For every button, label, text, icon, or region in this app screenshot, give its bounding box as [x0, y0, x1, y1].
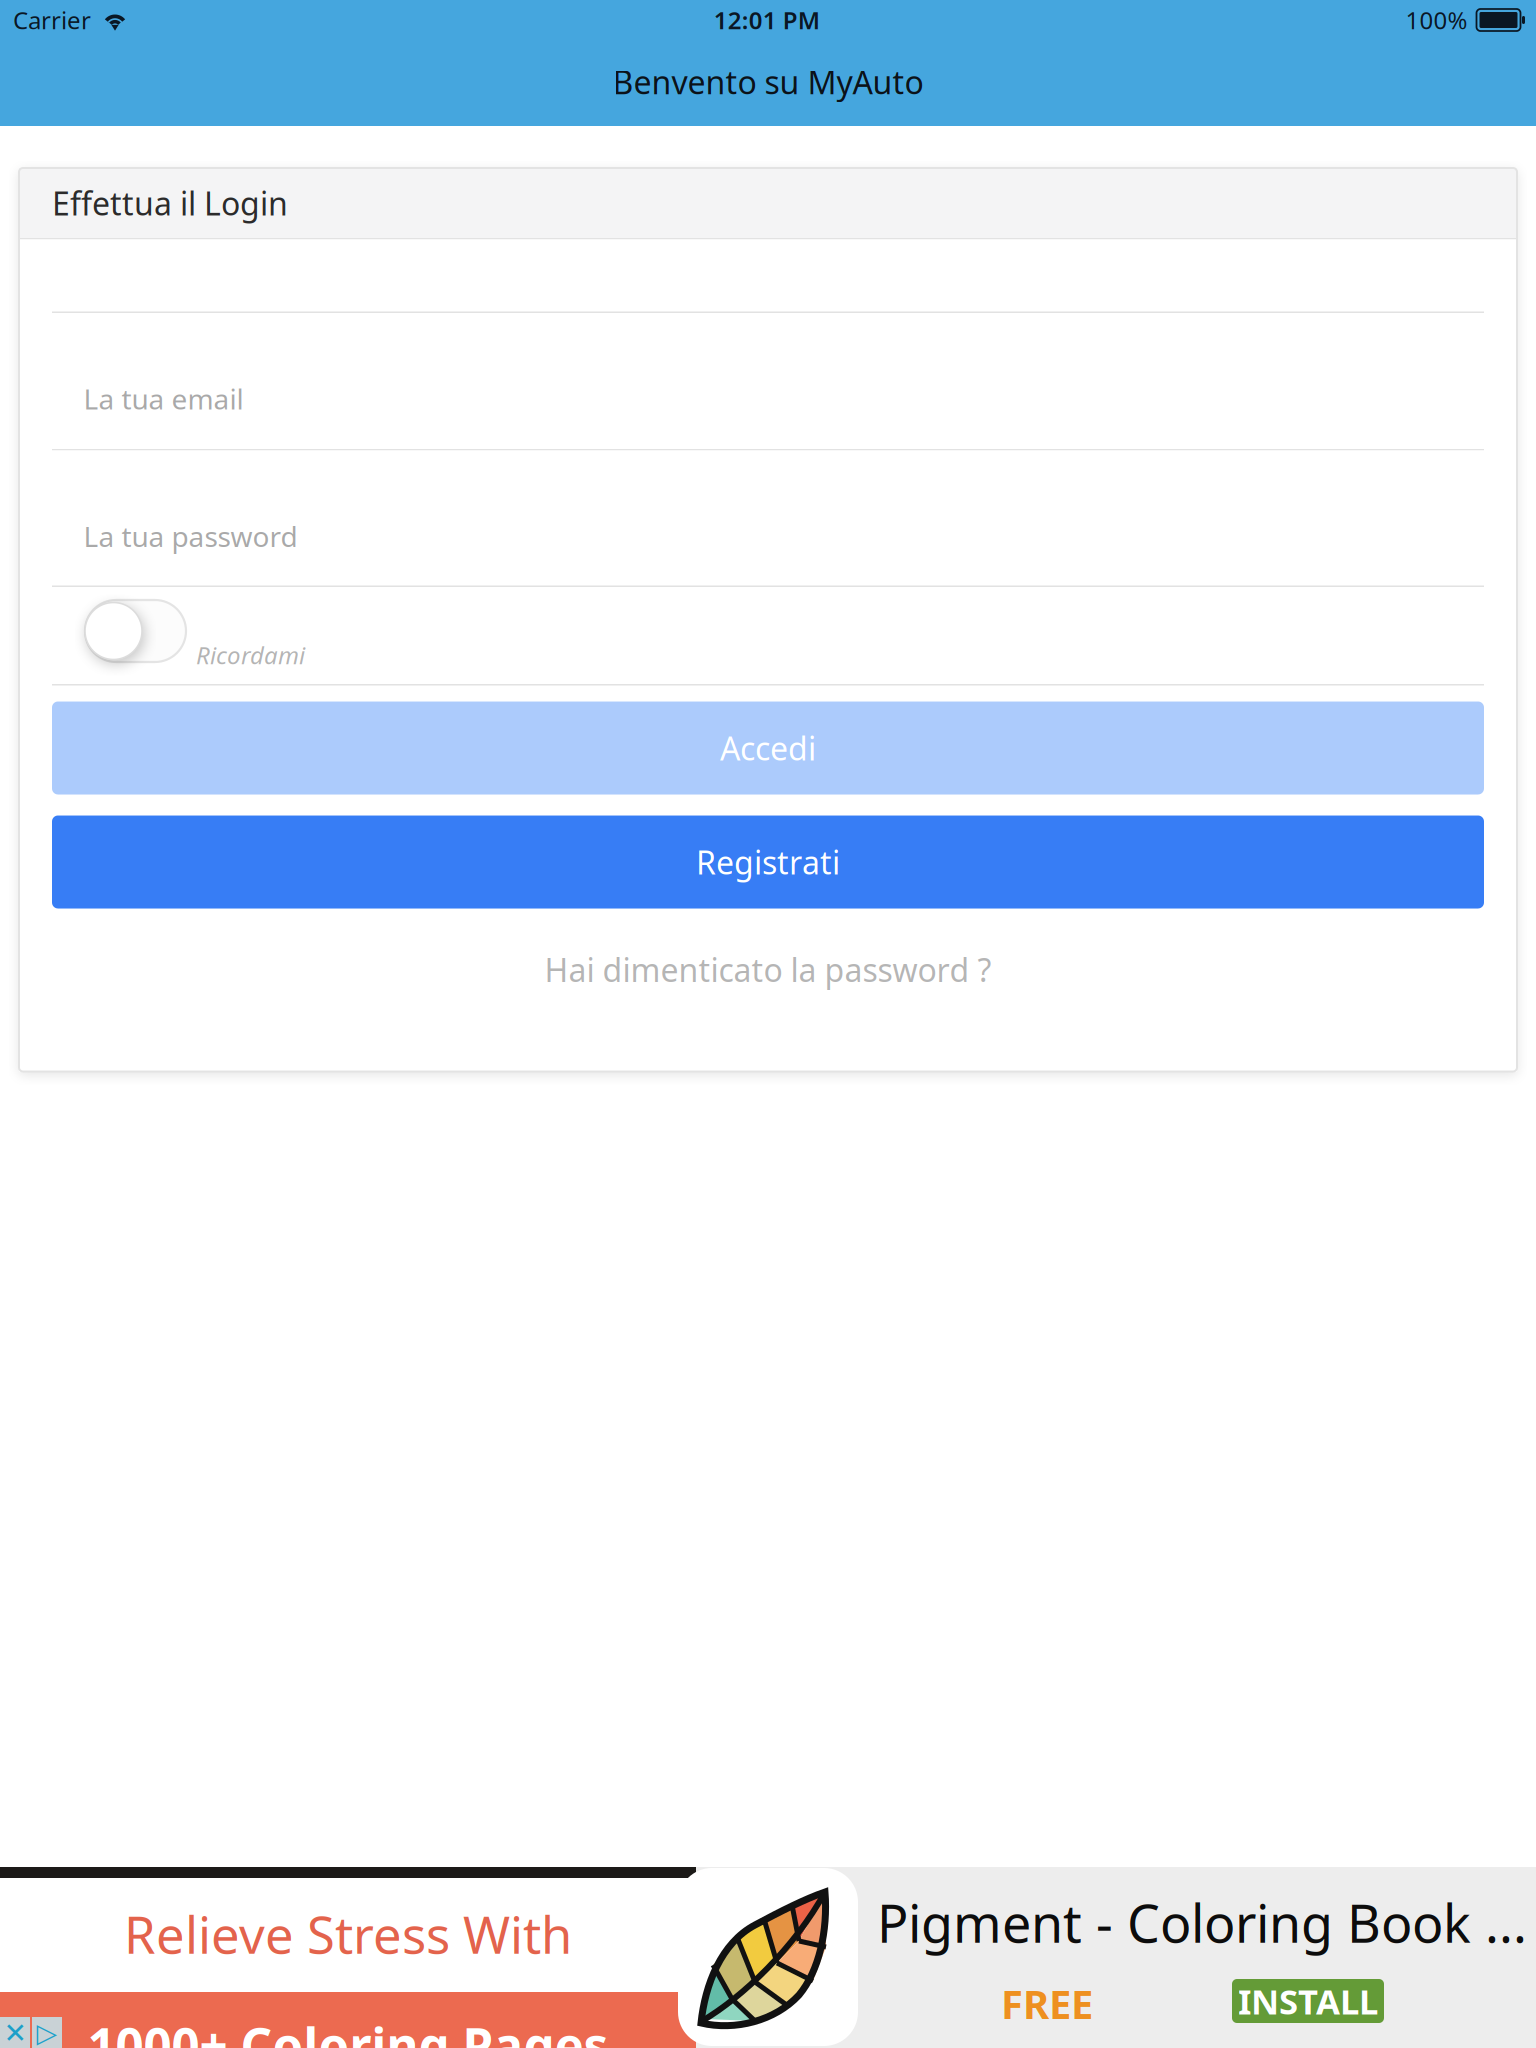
staticText: 100%	[1405, 4, 1467, 36]
staticText: INSTALL	[1238, 1978, 1378, 2024]
staticText: ✕	[3, 2017, 26, 2048]
button[interactable]: La tua email	[19, 313, 1517, 449]
button[interactable]: La tua password	[19, 450, 1517, 585]
button[interactable]: Registrati	[52, 815, 1484, 908]
staticText: Benvento su MyAuto	[612, 60, 923, 103]
staticText: La tua email	[83, 380, 243, 417]
staticText: Registrati	[696, 841, 840, 883]
staticText: Ricordami	[196, 639, 305, 671]
staticText: 1000+ Coloring Pages	[87, 2012, 608, 2048]
button[interactable]: Ricordami	[19, 587, 1517, 684]
button[interactable]: Advertisement: Pigment Coloring Book, fr…	[0, 1867, 1536, 2048]
staticText: Carrier	[13, 4, 91, 36]
button[interactable]: Hai dimenticato la password ?	[52, 929, 1484, 1009]
staticText: Pigment - Coloring Book ...	[877, 1888, 1527, 1957]
staticText: FREE	[1001, 1977, 1093, 2030]
button[interactable]: Accedi	[52, 701, 1484, 794]
staticText: La tua password	[83, 517, 297, 555]
staticText: Accedi	[720, 727, 816, 769]
staticText: Relieve Stress With	[124, 1900, 572, 1968]
staticText: Effettua il Login	[52, 182, 288, 224]
staticText: 12:01 PM	[714, 4, 820, 36]
staticText: ▷	[36, 2018, 57, 2048]
staticText: Hai dimenticato la password ?	[544, 948, 991, 991]
